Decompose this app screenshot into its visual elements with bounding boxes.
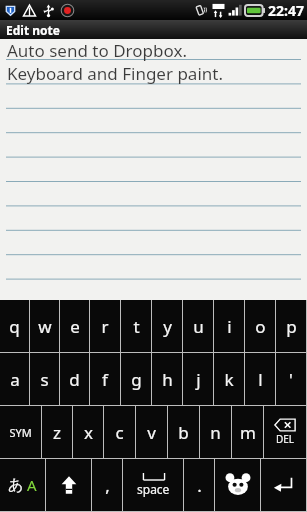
button[interactable]: Enter — [261, 459, 306, 511]
button[interactable]: x — [73, 406, 103, 458]
staticText: d — [69, 368, 80, 391]
staticText: j — [196, 368, 201, 391]
staticText: A — [27, 475, 37, 495]
button[interactable]: ' — [276, 353, 306, 405]
button[interactable]: Delete — [264, 406, 306, 458]
button[interactable]: y — [152, 300, 182, 352]
button[interactable]: e — [60, 300, 89, 352]
staticText: c — [115, 421, 124, 444]
staticText: p — [286, 315, 297, 338]
staticText: s — [40, 368, 49, 391]
staticText: v — [147, 421, 156, 444]
staticText: n — [210, 421, 221, 444]
button[interactable]: a — [0, 353, 29, 405]
button[interactable]: z — [42, 406, 72, 458]
staticText: a — [10, 368, 20, 391]
staticText: z — [53, 421, 61, 444]
staticText: , — [105, 474, 110, 497]
staticText: q — [9, 315, 20, 338]
button[interactable]: l — [245, 353, 275, 405]
button[interactable]: u — [183, 300, 213, 352]
button[interactable]: p — [276, 300, 306, 352]
button[interactable]: v — [136, 406, 167, 458]
staticText: i — [227, 315, 232, 338]
button[interactable]: r — [90, 300, 120, 352]
button[interactable]: h — [152, 353, 182, 405]
button[interactable]: m — [232, 406, 263, 458]
button[interactable]: d — [60, 353, 89, 405]
button[interactable]: k — [214, 353, 244, 405]
staticText: space — [137, 481, 170, 497]
staticText: . — [197, 474, 202, 497]
staticText: g — [131, 368, 142, 391]
button[interactable]: Emoji — [215, 459, 260, 511]
staticText: h — [162, 368, 173, 391]
button[interactable]: c — [104, 406, 135, 458]
button[interactable]: j — [183, 353, 213, 405]
staticText: b — [178, 421, 189, 444]
button[interactable]: Auto send to Dropbox. — [0, 39, 307, 300]
button[interactable]: o — [245, 300, 275, 352]
staticText: f — [102, 368, 108, 391]
button[interactable]: space — [123, 459, 183, 511]
staticText: w — [38, 315, 52, 338]
staticText: x — [84, 421, 93, 444]
button[interactable]: Shift — [46, 459, 91, 511]
staticText: Keyboard and Finger paint. — [7, 62, 223, 85]
staticText: y — [163, 315, 172, 338]
button[interactable]: Switch language — [0, 459, 45, 511]
button[interactable]: q — [0, 300, 29, 352]
staticText: Auto send to Dropbox. — [7, 39, 187, 62]
staticText: u — [193, 315, 204, 338]
button[interactable]: . — [184, 459, 214, 511]
button[interactable]: t — [121, 300, 151, 352]
staticText: DEL — [276, 432, 295, 446]
button[interactable]: i — [214, 300, 244, 352]
staticText: r — [101, 315, 109, 338]
staticText: t — [133, 315, 140, 338]
staticText: e — [70, 315, 80, 338]
button[interactable]: f — [90, 353, 120, 405]
staticText: ' — [289, 368, 293, 391]
staticText: k — [224, 368, 234, 391]
staticText: m — [240, 421, 256, 444]
button[interactable]: n — [200, 406, 231, 458]
staticText: o — [255, 315, 266, 338]
staticText: Edit note — [6, 22, 60, 38]
button[interactable]: w — [30, 300, 59, 352]
staticText: SYM — [9, 425, 32, 440]
button[interactable]: g — [121, 353, 151, 405]
staticText: l — [258, 368, 263, 391]
button[interactable]: b — [168, 406, 199, 458]
button[interactable]: , — [92, 459, 122, 511]
staticText: 22:47 — [268, 1, 304, 20]
button[interactable]: SYM — [0, 406, 41, 458]
staticText: あ — [8, 476, 24, 495]
button[interactable]: s — [30, 353, 59, 405]
